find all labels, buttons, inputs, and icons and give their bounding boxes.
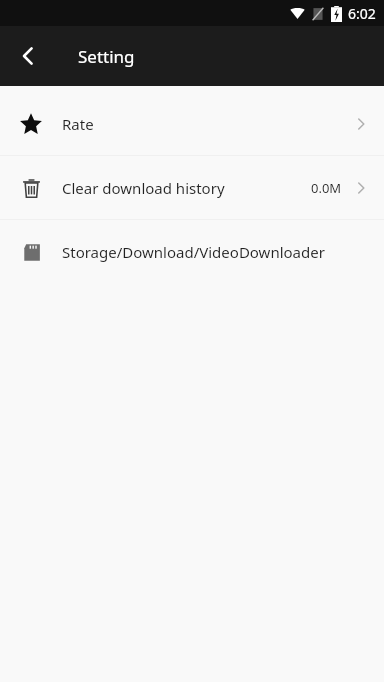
button[interactable]: Back	[0, 28, 56, 84]
staticText: Storage/Download/VideoDownloader	[62, 242, 325, 262]
button[interactable]: Rate	[0, 92, 384, 155]
staticText: 0.0M	[311, 179, 342, 197]
button[interactable]: Clear download history	[0, 156, 384, 219]
staticText: Rate	[62, 114, 94, 134]
button[interactable]: Storage/Download/VideoDownloader	[0, 220, 384, 283]
staticText: Clear download history	[62, 178, 225, 198]
staticText: Setting	[78, 45, 135, 68]
staticText: 6:02	[348, 4, 376, 23]
